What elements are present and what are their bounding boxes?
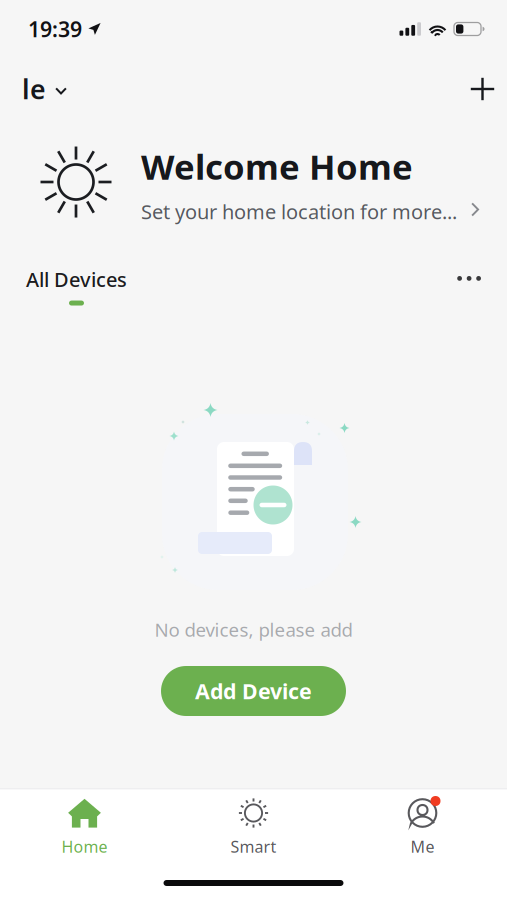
button[interactable]: All Devices <box>0 263 147 307</box>
button[interactable]: le <box>0 62 83 116</box>
staticText: le <box>22 71 46 107</box>
button[interactable]: Me <box>338 788 507 865</box>
staticText: Welcome Home <box>141 143 413 189</box>
staticText: 19:39 <box>28 15 82 43</box>
button[interactable]: Home <box>0 788 169 865</box>
staticText: Set your home location for more... <box>141 198 457 225</box>
staticText: No devices, please add <box>154 617 352 642</box>
staticText: All Devices <box>26 266 127 293</box>
staticText: Home <box>61 836 107 857</box>
staticText: Me <box>410 836 434 857</box>
button[interactable]: Welcome Home <box>0 137 507 227</box>
staticText: Add Device <box>195 677 312 705</box>
button[interactable]: More options <box>437 263 507 293</box>
button[interactable]: Add <box>452 68 507 110</box>
staticText: Smart <box>230 836 276 857</box>
button[interactable]: Smart <box>169 788 338 865</box>
button[interactable]: Add Device <box>161 666 346 716</box>
